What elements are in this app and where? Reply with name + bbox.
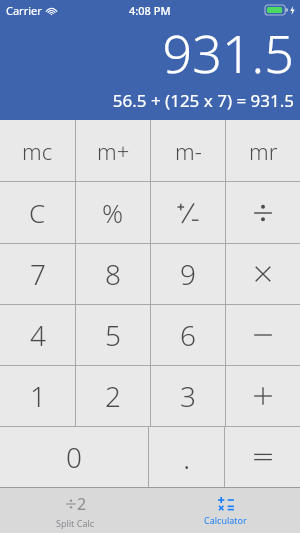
staticText: m+ — [97, 136, 130, 166]
staticText: 8 — [105, 255, 121, 293]
staticText: mc — [22, 136, 53, 166]
staticText: Calculator — [204, 514, 247, 526]
staticText: 931.5 — [162, 17, 294, 88]
staticText: 2 — [105, 377, 121, 415]
button[interactable]: 7 — [0, 244, 75, 304]
staticText: mr — [249, 136, 278, 166]
button[interactable]: 3 — [151, 366, 225, 426]
button[interactable]: Plus or minus — [151, 182, 225, 243]
button[interactable]: mr — [226, 120, 300, 181]
button[interactable]: Equals — [225, 427, 300, 487]
button[interactable]: Divide — [226, 182, 300, 243]
button[interactable]: 0 — [0, 427, 148, 487]
staticText: m- — [175, 136, 202, 166]
button[interactable]: 8 — [76, 244, 150, 304]
button[interactable]: 1 — [0, 366, 75, 426]
button[interactable]: 4 — [0, 305, 75, 365]
staticText: 5 — [105, 316, 121, 354]
button[interactable]: 2 — [76, 366, 150, 426]
staticText: . — [183, 437, 191, 478]
staticText: 6 — [180, 316, 196, 354]
staticText: 0 — [66, 438, 82, 476]
button[interactable]: Plus — [226, 366, 300, 426]
staticText: Split Calc — [56, 517, 95, 529]
staticText: 2 — [77, 493, 87, 515]
button[interactable]: % — [76, 182, 150, 243]
button[interactable]: m+ — [76, 120, 150, 181]
staticText: 7 — [30, 255, 46, 293]
staticText: 3 — [180, 377, 196, 415]
staticText: 4 — [30, 316, 46, 354]
button[interactable]: C — [0, 182, 75, 243]
staticText: C — [29, 195, 46, 230]
button[interactable]: Minus — [226, 305, 300, 365]
button[interactable]: 6 — [151, 305, 225, 365]
button[interactable]: . — [149, 427, 224, 487]
staticText: 56.5 + (125 x 7) = 931.5 — [112, 89, 294, 112]
button[interactable]: 2 — [0, 488, 150, 533]
staticText: % — [102, 195, 124, 230]
button[interactable]: Multiply — [226, 244, 300, 304]
button[interactable]: Calculator — [150, 488, 300, 533]
button[interactable]: mc — [0, 120, 75, 181]
staticText: Carrier — [6, 3, 42, 18]
button[interactable]: m- — [151, 120, 225, 181]
button[interactable]: 5 — [76, 305, 150, 365]
staticText: 1 — [30, 377, 46, 415]
staticText: 9 — [180, 255, 196, 293]
button[interactable]: 9 — [151, 244, 225, 304]
staticText: 4:08 PM — [129, 3, 171, 18]
